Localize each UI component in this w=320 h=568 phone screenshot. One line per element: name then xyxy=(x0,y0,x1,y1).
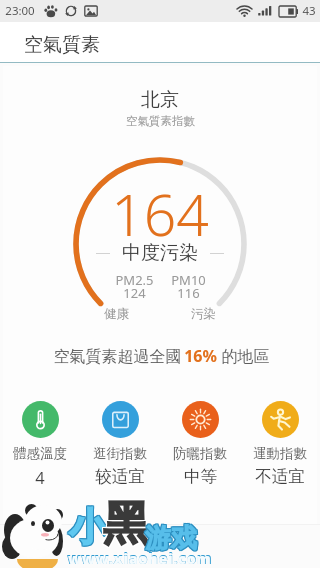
staticText: 不适宜 xyxy=(255,466,305,487)
staticText: 空氣質素 xyxy=(24,33,100,57)
staticText: 23:00 xyxy=(5,3,35,19)
staticText: 黑 xyxy=(102,496,148,554)
staticText: 黑 xyxy=(103,495,149,553)
staticText: 小 xyxy=(68,504,106,552)
staticText: 中等 xyxy=(184,466,217,487)
staticText: 體感溫度 xyxy=(13,445,67,462)
staticText: 游戏 xyxy=(146,523,198,556)
staticText: www.xiaohei.com xyxy=(68,548,212,568)
staticText: 游戏 xyxy=(144,523,196,556)
button[interactable]: 空氣質素 xyxy=(0,22,320,62)
staticText: 较适宜 xyxy=(95,466,145,487)
staticText: 健康 xyxy=(104,306,129,322)
staticText: 游戏 xyxy=(144,521,196,554)
staticText: 16% xyxy=(184,345,217,367)
staticText: 游戏 xyxy=(146,521,198,554)
staticText: 北京 xyxy=(141,88,179,112)
staticText: 空氣質素超過全國 xyxy=(51,345,184,367)
staticText: 164 xyxy=(111,175,209,253)
button[interactable]: 防曬指數 xyxy=(160,398,240,490)
staticText: 污染 xyxy=(191,306,216,322)
staticText: 小 xyxy=(70,503,108,551)
staticText: www.xiaohei.com xyxy=(67,548,213,568)
staticText: 的地區 xyxy=(217,345,270,367)
staticText: 黑 xyxy=(104,495,150,553)
staticText: 游戏 xyxy=(145,522,197,555)
staticText: 逛街指數 xyxy=(93,445,147,462)
staticText: 116 xyxy=(177,284,200,302)
staticText: 小 xyxy=(70,502,108,550)
staticText: PM10 xyxy=(171,271,206,289)
staticText: 黑 xyxy=(102,495,148,553)
staticText: 小 xyxy=(68,503,106,551)
button[interactable]: 逛街指數 xyxy=(80,398,160,490)
staticText: 黑 xyxy=(104,494,150,552)
staticText: 中度污染 xyxy=(122,241,198,265)
staticText: 4 xyxy=(35,466,45,488)
staticText: PM2.5 xyxy=(115,271,154,289)
staticText: 小 xyxy=(69,502,107,550)
staticText: 小 xyxy=(69,503,107,551)
staticText: 黑 xyxy=(103,494,149,552)
staticText: 游戏 xyxy=(145,521,197,554)
staticText: 游戏 xyxy=(145,523,197,556)
staticText: 43 xyxy=(302,3,316,19)
staticText: 小 xyxy=(70,504,108,552)
staticText: 黑 xyxy=(103,496,149,554)
staticText: 游戏 xyxy=(144,522,196,555)
staticText: 黑 xyxy=(104,496,150,554)
button[interactable]: 運動指數 xyxy=(240,398,320,490)
staticText: 124 xyxy=(123,284,146,302)
staticText: 游戏 xyxy=(146,522,198,555)
staticText: 空氣質素指數 xyxy=(126,114,195,128)
staticText: 運動指數 xyxy=(253,445,307,462)
staticText: 小 xyxy=(68,502,106,550)
staticText: 小 xyxy=(69,504,107,552)
staticText: 黑 xyxy=(102,494,148,552)
staticText: 防曬指數 xyxy=(173,445,227,462)
button[interactable]: 體感溫度 xyxy=(0,398,80,491)
